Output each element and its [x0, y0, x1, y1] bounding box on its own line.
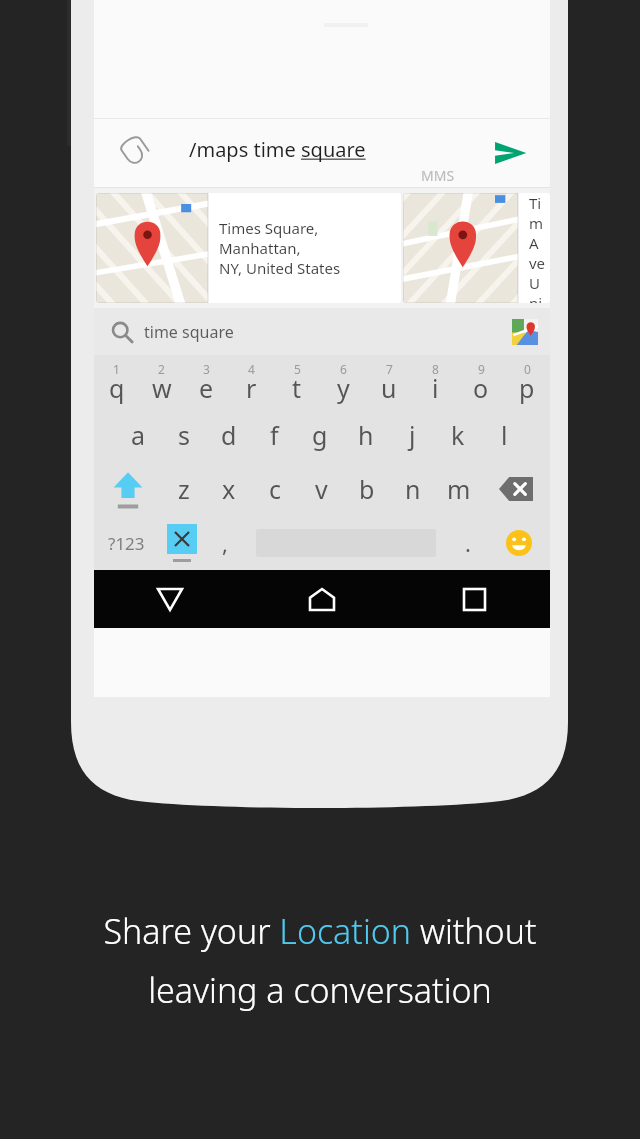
button[interactable]: 3: [184, 355, 229, 408]
staticText: 7: [386, 361, 393, 377]
staticText: n: [405, 472, 421, 506]
button[interactable]: c: [252, 462, 298, 516]
button[interactable]: v: [298, 462, 344, 516]
staticText: 2: [158, 361, 165, 377]
button[interactable]: Tim Ave Uni: [403, 193, 550, 303]
button[interactable]: f: [251, 408, 297, 462]
staticText: e: [199, 371, 214, 405]
staticText: y: [337, 371, 350, 405]
button[interactable]: j: [389, 408, 435, 462]
staticText: d: [221, 418, 237, 452]
staticText: w: [152, 371, 172, 405]
button[interactable]: h: [343, 408, 389, 462]
button[interactable]: b: [344, 462, 390, 516]
staticText: ,: [222, 528, 228, 558]
staticText: m: [447, 472, 471, 506]
button[interactable]: Back: [94, 570, 246, 628]
staticText: c: [269, 472, 282, 506]
staticText: k: [451, 418, 465, 452]
staticText: 1: [113, 361, 120, 377]
button[interactable]: x: [206, 462, 252, 516]
button[interactable]: Google Maps: [512, 319, 538, 345]
staticText: h: [358, 418, 374, 452]
staticText: .: [465, 528, 471, 558]
button[interactable]: 6: [320, 355, 366, 408]
staticText: MMS: [421, 166, 455, 185]
staticText: time square: [144, 321, 234, 343]
button[interactable]: .: [448, 516, 487, 570]
button[interactable]: l: [481, 408, 527, 462]
staticText: /maps time square: [189, 136, 366, 163]
button[interactable]: 8: [412, 355, 458, 408]
staticText: q: [109, 371, 125, 405]
button[interactable]: Attach: [108, 128, 158, 178]
staticText: z: [178, 472, 190, 506]
button[interactable]: n: [390, 462, 436, 516]
staticText: Times Square, Manhattan, NY, United Stat…: [219, 218, 397, 278]
button[interactable]: Shift: [94, 462, 161, 516]
button[interactable]: a: [116, 408, 161, 462]
staticText: i: [432, 371, 439, 405]
staticText: 5: [294, 361, 301, 377]
staticText: g: [312, 418, 328, 452]
button[interactable]: 5: [274, 355, 320, 408]
button[interactable]: k: [435, 408, 481, 462]
button[interactable]: 1: [94, 355, 139, 408]
button[interactable]: d: [206, 408, 251, 462]
button[interactable]: Clear: [158, 516, 205, 570]
staticText: 4: [248, 361, 255, 377]
staticText: 0: [524, 361, 531, 377]
staticText: r: [246, 371, 257, 405]
other: Search: [102, 313, 140, 351]
staticText: Share your Location without leaving a co…: [0, 908, 640, 1013]
button[interactable]: 2: [139, 355, 184, 408]
button[interactable]: z: [161, 462, 206, 516]
staticText: Tim Ave Uni: [529, 193, 546, 303]
staticText: ?123: [108, 532, 145, 555]
button[interactable]: m: [436, 462, 482, 516]
button[interactable]: 0: [504, 355, 550, 408]
button[interactable]: s: [161, 408, 206, 462]
button[interactable]: Backspace: [482, 462, 550, 516]
staticText: u: [381, 371, 397, 405]
button[interactable]: Emoji: [487, 516, 550, 570]
button[interactable]: Send: [482, 125, 538, 181]
staticText: j: [409, 418, 416, 452]
button[interactable]: Space: [244, 516, 448, 570]
button[interactable]: 9: [458, 355, 504, 408]
staticText: o: [473, 371, 489, 405]
staticText: f: [270, 418, 279, 452]
staticText: x: [222, 472, 236, 506]
staticText: a: [131, 418, 146, 452]
staticText: 6: [340, 361, 347, 377]
staticText: v: [315, 472, 328, 506]
button[interactable]: ?123: [94, 516, 158, 570]
button[interactable]: Times Square, Manhattan, NY, United Stat…: [96, 193, 401, 303]
staticText: s: [178, 418, 190, 452]
staticText: p: [519, 371, 535, 405]
staticText: b: [359, 472, 375, 506]
staticText: 9: [478, 361, 485, 377]
button[interactable]: Home: [246, 570, 398, 628]
button[interactable]: g: [297, 408, 343, 462]
button[interactable]: Recents: [398, 570, 550, 628]
staticText: l: [501, 418, 508, 452]
button[interactable]: 7: [366, 355, 412, 408]
staticText: 8: [432, 361, 439, 377]
staticText: t: [292, 371, 302, 405]
staticText: 3: [203, 361, 210, 377]
button[interactable]: ,: [205, 516, 244, 570]
button[interactable]: 4: [229, 355, 274, 408]
